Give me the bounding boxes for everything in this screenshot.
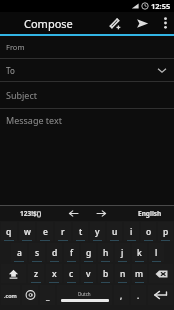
staticText: _ xyxy=(46,290,50,301)
button[interactable]: To xyxy=(0,59,174,81)
button[interactable]: Shift xyxy=(1,264,26,283)
staticText: b xyxy=(103,268,109,280)
button[interactable]: l xyxy=(149,243,164,262)
button[interactable]: More options xyxy=(156,12,174,34)
staticText: c xyxy=(69,268,74,280)
staticText: s xyxy=(35,247,40,259)
button[interactable]: _ xyxy=(40,285,55,305)
staticText: u xyxy=(112,226,118,238)
staticText: z xyxy=(34,268,39,280)
button[interactable]: Send xyxy=(128,12,156,34)
button[interactable]: o xyxy=(141,222,156,241)
button[interactable]: Backspace xyxy=(149,264,173,283)
button[interactable]: Message text xyxy=(0,109,174,131)
button[interactable]: j xyxy=(115,243,130,262)
button[interactable]: q xyxy=(1,222,17,241)
staticText: n xyxy=(120,268,126,280)
button[interactable]: g xyxy=(81,243,96,262)
button[interactable]: . xyxy=(131,285,146,305)
button[interactable]: w xyxy=(19,222,35,241)
staticText: e xyxy=(43,226,48,238)
button[interactable]: Subject xyxy=(0,82,174,108)
button[interactable]: Attach file xyxy=(100,12,128,34)
staticText: , xyxy=(120,290,123,301)
button[interactable]: v xyxy=(81,264,96,283)
staticText: q xyxy=(6,226,12,238)
button[interactable]: p xyxy=(158,222,173,241)
button[interactable]: r xyxy=(55,222,71,241)
staticText: Compose xyxy=(24,16,73,31)
staticText: j xyxy=(121,247,124,259)
button[interactable]: d xyxy=(47,243,62,262)
button[interactable]: English xyxy=(138,209,162,218)
button[interactable]: f xyxy=(64,243,79,262)
button[interactable]: h xyxy=(98,243,113,262)
staticText: From xyxy=(6,42,25,52)
button[interactable]: t xyxy=(73,222,88,241)
button[interactable]: , xyxy=(114,285,129,305)
staticText: k xyxy=(137,247,142,259)
button[interactable]: From xyxy=(0,36,174,58)
staticText: Message text xyxy=(6,114,63,126)
button[interactable]: m xyxy=(132,264,147,283)
staticText: p xyxy=(163,226,169,238)
button[interactable]: Space xyxy=(57,285,112,305)
staticText: g xyxy=(86,247,92,259)
button[interactable]: .com xyxy=(1,285,20,305)
staticText: Subject xyxy=(6,89,38,101)
button[interactable]: At sign xyxy=(22,285,38,305)
staticText: l xyxy=(155,247,158,259)
staticText: m xyxy=(135,268,144,280)
button[interactable]: a xyxy=(11,243,27,262)
staticText: To xyxy=(6,65,15,76)
staticText: t xyxy=(79,226,83,238)
staticText: w xyxy=(24,226,31,238)
button[interactable]: s xyxy=(29,243,45,262)
staticText: 12:55 xyxy=(151,1,171,11)
button[interactable]: c xyxy=(64,264,79,283)
staticText: h xyxy=(103,247,109,259)
staticText: x xyxy=(52,268,57,280)
staticText: r xyxy=(61,226,65,238)
button[interactable]: b xyxy=(98,264,113,283)
staticText: a xyxy=(17,247,22,259)
button[interactable]: x xyxy=(46,264,62,283)
staticText: y xyxy=(95,226,100,238)
staticText: o xyxy=(146,226,152,238)
staticText: Dutch xyxy=(78,291,91,297)
button[interactable]: k xyxy=(132,243,147,262)
button[interactable]: Previous xyxy=(64,206,82,221)
staticText: d xyxy=(52,247,58,259)
staticText: i xyxy=(130,226,133,238)
button[interactable]: 123!$() xyxy=(20,209,42,218)
staticText: . xyxy=(137,290,140,301)
button[interactable]: e xyxy=(37,222,53,241)
staticText: f xyxy=(70,247,74,259)
button[interactable]: i xyxy=(124,222,139,241)
button[interactable]: Enter xyxy=(148,285,173,305)
staticText: .com xyxy=(4,292,17,299)
button[interactable]: n xyxy=(115,264,130,283)
button[interactable]: Next xyxy=(92,206,110,221)
staticText: v xyxy=(86,268,91,280)
button[interactable]: u xyxy=(107,222,122,241)
button[interactable]: z xyxy=(28,264,44,283)
button[interactable]: y xyxy=(90,222,105,241)
